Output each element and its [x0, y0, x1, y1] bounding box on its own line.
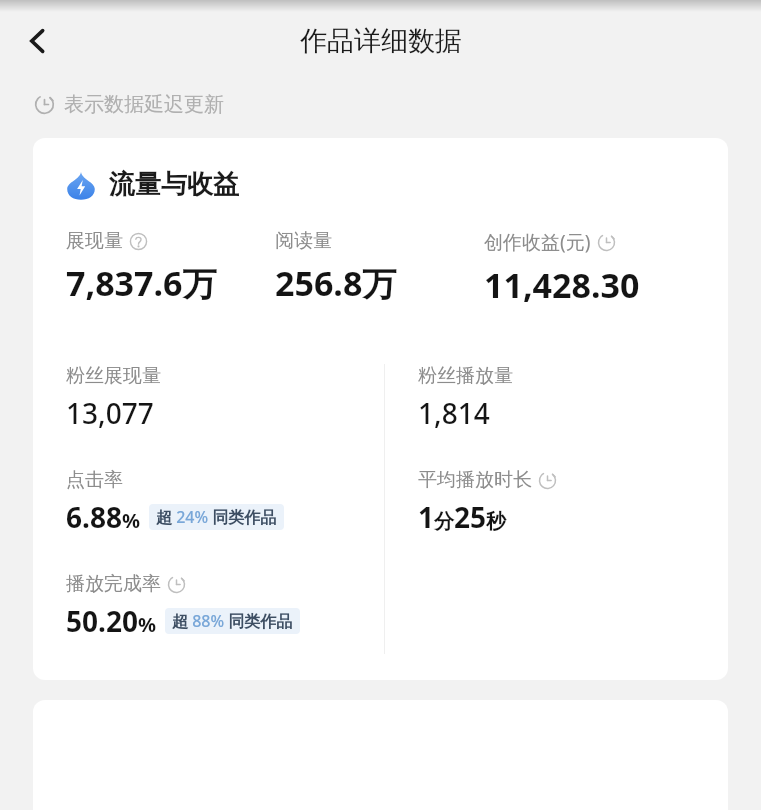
staticText: 作品详细数据 [300, 24, 462, 58]
button[interactable]: 超 24% 同类作品 [149, 504, 284, 530]
staticText: 6.88% [66, 498, 140, 536]
staticText: 超 88% 同类作品 [172, 610, 293, 632]
staticText: 平均播放时长 [418, 468, 532, 492]
staticText: 点击率 [66, 468, 123, 492]
staticText: 1分25秒 [418, 498, 507, 536]
staticText: 阅读量 [275, 229, 332, 253]
staticText: 超 24% 同类作品 [156, 506, 277, 528]
staticText: 流量与收益 [109, 168, 239, 201]
staticText: 展现量 [66, 229, 123, 253]
button[interactable]: Back [14, 17, 62, 65]
staticText: 50.20% [66, 602, 156, 640]
staticText: 11,428.30 [484, 262, 640, 308]
staticText: 1,814 [418, 394, 490, 432]
staticText: 表示数据延迟更新 [64, 92, 224, 117]
staticText: 256.8万 [275, 260, 397, 306]
staticText: 7,837.6万 [66, 260, 217, 306]
button[interactable]: 超 88% 同类作品 [165, 608, 300, 634]
staticText: 播放完成率 [66, 572, 161, 596]
staticText: 13,077 [66, 394, 154, 432]
staticText: 创作收益(元) [484, 229, 591, 255]
staticText: 粉丝播放量 [418, 364, 513, 388]
staticText: 粉丝展现量 [66, 364, 161, 388]
